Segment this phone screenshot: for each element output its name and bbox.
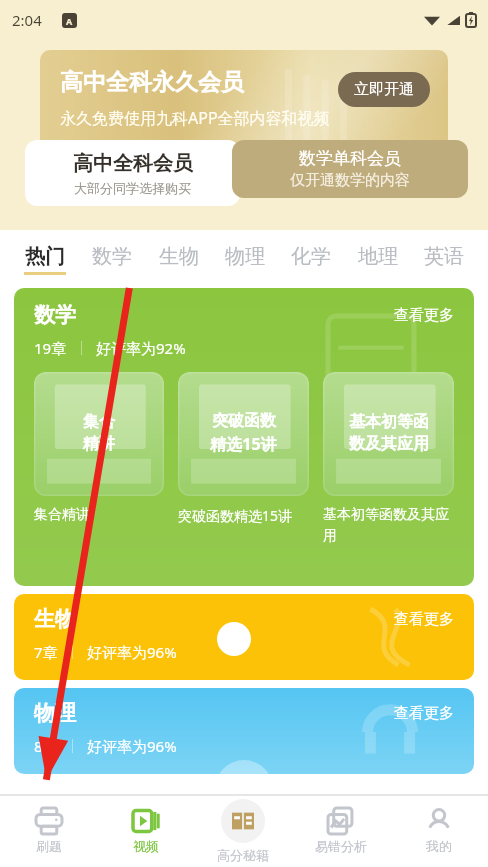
other: 易错分析 [328, 808, 354, 834]
staticText: 数学 [34, 302, 76, 328]
staticText: 突破函数 [212, 411, 276, 431]
button[interactable]: 查看更多 [394, 606, 454, 629]
button[interactable]: 刷题 [0, 795, 97, 867]
button[interactable]: 基本初等函 [323, 372, 454, 496]
staticText: 精讲 [83, 434, 115, 454]
staticText: 刷题 [36, 838, 62, 854]
staticText: 仅开通数学的内容 [290, 171, 410, 190]
other: 视频 [133, 808, 159, 834]
staticText: 数及其应用 [349, 434, 429, 454]
staticText: 我的 [426, 838, 452, 854]
staticText: 好评率为92% [96, 338, 186, 358]
staticText: 物理 [225, 244, 265, 269]
button[interactable]: 生物 [14, 594, 474, 680]
staticText: 2:04 [12, 10, 42, 30]
other: 我的 [426, 808, 452, 834]
staticText: 查看更多 [394, 306, 454, 325]
staticText: 集合精讲 [34, 506, 164, 524]
button[interactable]: 热门 [22, 244, 68, 275]
staticText: 热门 [25, 244, 65, 269]
staticText: 易错分析 [315, 838, 367, 854]
button[interactable]: 高分秘籍 [194, 795, 292, 867]
button[interactable]: 突破函数 [178, 372, 309, 496]
staticText: 集合 [83, 412, 115, 432]
button[interactable]: 视频 [97, 795, 194, 867]
button[interactable]: 查看更多 [394, 700, 454, 723]
button[interactable]: 英语 [422, 244, 466, 275]
button[interactable]: 物理 [14, 688, 474, 774]
button[interactable]: 数学单科会员 [232, 140, 468, 198]
staticText: 英语 [424, 244, 464, 269]
staticText: 大部分同学选择购买 [74, 180, 191, 196]
button[interactable]: 我的 [390, 795, 488, 867]
staticText: 地理 [358, 244, 398, 269]
staticText: 高中全科会员 [73, 151, 193, 176]
staticText: 高中全科永久会员 [60, 68, 244, 97]
button[interactable]: 物理 [223, 244, 267, 275]
staticText: 数学 [92, 244, 132, 269]
staticText: 化学 [291, 244, 331, 269]
staticText: 数学单科会员 [299, 148, 401, 169]
other: 高分秘籍 [221, 799, 265, 843]
button[interactable]: 高中全科会员 [25, 140, 240, 206]
button[interactable]: 地理 [356, 244, 400, 275]
staticText: 立即开通 [354, 80, 414, 99]
staticText: 查看更多 [394, 610, 454, 629]
button[interactable]: 立即开通 [338, 72, 430, 107]
staticText: 好评率为96% [87, 642, 177, 662]
button[interactable]: 数学 [90, 244, 134, 275]
staticText: 查看更多 [394, 704, 454, 723]
staticText: A [66, 15, 73, 27]
staticText: 永久免费使用九科APP全部内容和视频 [60, 107, 330, 129]
button[interactable]: 集合 [34, 372, 164, 496]
other: 刷题 [36, 808, 62, 834]
staticText: 基本初等函 [349, 412, 429, 432]
button[interactable]: 数学 [14, 288, 474, 586]
button[interactable]: 易错分析 [292, 795, 390, 867]
staticText: 基本初等函数及其应用 [323, 506, 454, 544]
staticText: 8章 [34, 736, 58, 756]
staticText: 视频 [133, 838, 159, 854]
button[interactable]: 高中全科永久会员 [40, 50, 448, 158]
staticText: 精选15讲 [210, 433, 277, 455]
button[interactable]: 生物 [157, 244, 201, 275]
staticText: 好评率为96% [87, 736, 177, 756]
staticText: 突破函数精选15讲 [178, 506, 309, 525]
staticText: 19章 [34, 338, 67, 358]
staticText: 生物 [159, 244, 199, 269]
staticText: 7章 [34, 642, 58, 662]
staticText: 高分秘籍 [217, 847, 269, 863]
staticText: 生物 [34, 606, 76, 632]
staticText: 物理 [34, 700, 76, 726]
button[interactable]: 化学 [289, 244, 333, 275]
button[interactable]: 查看更多 [394, 302, 454, 325]
